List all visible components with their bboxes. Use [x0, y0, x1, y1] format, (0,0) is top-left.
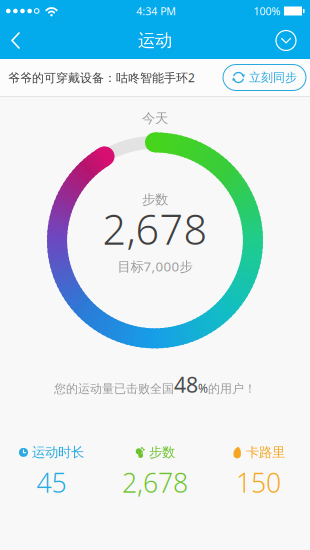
button[interactable] — [275, 29, 310, 51]
staticText: 2,678 — [122, 465, 188, 500]
staticText: 100% — [253, 4, 280, 18]
button[interactable] — [0, 22, 23, 59]
staticText: 步数 — [142, 191, 168, 208]
staticText: 目标7,000步 — [117, 257, 192, 275]
staticText: 爷爷的可穿戴设备：咕咚智能手环2 — [8, 69, 195, 85]
staticText: % — [198, 380, 208, 396]
staticText: 卡路里 — [246, 444, 285, 461]
button[interactable]: 立刻同步 — [223, 64, 310, 90]
staticText: 的用户！ — [208, 381, 256, 396]
staticText: 立刻同步 — [249, 70, 297, 85]
staticText: 2,678 — [102, 201, 207, 256]
staticText: 150 — [236, 465, 281, 500]
staticText: 48 — [174, 370, 198, 399]
staticText: 运动时长 — [32, 444, 84, 461]
staticText: 步数 — [149, 444, 175, 461]
staticText: 4:34 PM — [136, 4, 176, 18]
staticText: 今天 — [142, 110, 168, 126]
staticText: 运动 — [138, 30, 172, 51]
staticText: 您的运动量已击败全国 — [54, 381, 174, 396]
staticText: 45 — [36, 465, 66, 500]
